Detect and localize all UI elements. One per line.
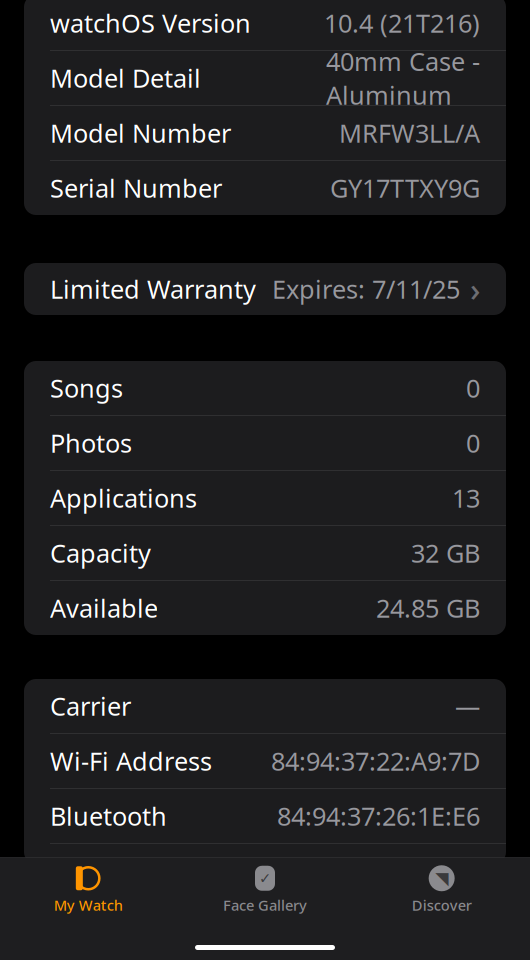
button[interactable]: My Watch	[0, 857, 177, 915]
staticText: 10.4 (21T216)	[324, 6, 480, 40]
staticText: 13	[452, 481, 480, 515]
staticText: Discover	[412, 895, 472, 915]
staticText: Applications	[50, 481, 197, 515]
staticText: Songs	[50, 371, 123, 405]
staticText: Photos	[50, 426, 132, 460]
staticText: Limited Warranty	[50, 272, 256, 306]
staticText: Serial Number	[50, 171, 222, 205]
staticText: 0	[466, 371, 480, 405]
staticText: Carrier	[50, 689, 131, 723]
staticText: 24.85 GB	[376, 591, 480, 625]
staticText: 40mm Case - Aluminum	[326, 44, 480, 112]
button[interactable]: ◥	[353, 857, 530, 915]
staticText: Expires: 7/11/25	[272, 272, 460, 306]
staticText: Wi-Fi Address	[50, 744, 212, 778]
staticText: 84:94:37:22:A9:7D	[271, 744, 480, 778]
staticText: ›	[470, 268, 480, 310]
button[interactable]: Limited Warranty	[24, 263, 506, 315]
staticText: GY17TTXY9G	[330, 171, 480, 205]
staticText: Face Gallery	[223, 895, 307, 915]
staticText: —	[455, 689, 480, 723]
button[interactable]: ✓	[177, 857, 353, 915]
staticText: MRFW3LL/A	[339, 116, 480, 150]
staticText: Bluetooth	[50, 799, 167, 833]
staticText: watchOS Version	[50, 6, 251, 40]
staticText: Model Detail	[50, 61, 201, 95]
staticText: My Watch	[54, 895, 123, 915]
staticText: 84:94:37:26:1E:E6	[277, 799, 480, 833]
staticText: Available	[50, 591, 158, 625]
staticText: 0	[466, 426, 480, 460]
staticText: ✓	[259, 870, 271, 886]
staticText: 32 GB	[411, 536, 480, 570]
staticText: Model Number	[50, 116, 231, 150]
staticText: Capacity	[50, 536, 151, 570]
staticText: ◥	[435, 868, 448, 888]
